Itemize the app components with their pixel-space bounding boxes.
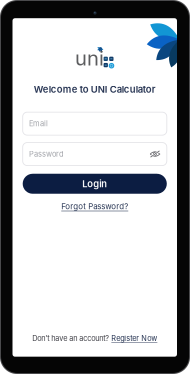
button[interactable]: Show password <box>149 149 160 159</box>
staticText: Forgot Password? <box>61 202 128 211</box>
staticText: Don't have an account? <box>32 334 109 343</box>
staticText: Login <box>82 178 107 189</box>
staticText: Register Now <box>111 334 157 343</box>
staticText: Password <box>29 149 64 158</box>
staticText: Welcome to UNI Calculator <box>34 84 156 95</box>
button[interactable]: Forgot Password? <box>61 202 128 211</box>
staticText: uni <box>75 46 104 70</box>
button[interactable]: Register Now <box>111 334 157 343</box>
button[interactable]: Login <box>23 174 167 194</box>
staticText: Email <box>29 119 48 128</box>
